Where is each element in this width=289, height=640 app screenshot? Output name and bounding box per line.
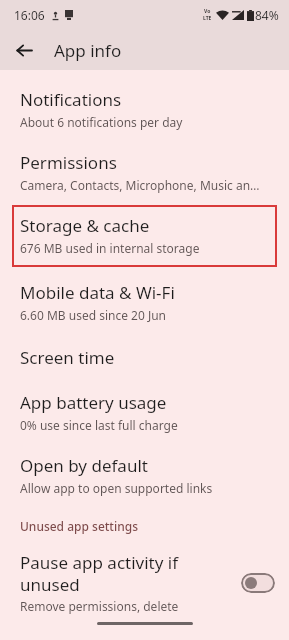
staticText: 676 MB used in internal storage (20, 240, 200, 256)
staticText: App battery usage (20, 391, 167, 414)
staticText: Open by default (20, 454, 148, 477)
button[interactable]: Mobile data & Wi-Fi (0, 281, 289, 323)
staticText: Permissions (20, 151, 117, 174)
staticText: Mobile data & Wi-Fi (20, 281, 175, 304)
button[interactable]: Pause app activity toggle (241, 573, 275, 593)
staticText: Camera, Contacts, Microphone, Music an… (20, 177, 260, 193)
button[interactable]: Pause app activity if unused (0, 551, 289, 614)
staticText: 84% (255, 7, 279, 23)
staticText: App info (54, 39, 122, 62)
staticText: LTE (203, 15, 212, 22)
staticText: Allow app to open supported links (20, 480, 213, 496)
staticText: 0% use since last full charge (20, 417, 178, 433)
button[interactable]: Storage & cache (12, 205, 277, 267)
staticText: 6.60 MB used since 20 Jun (20, 307, 167, 323)
staticText: Screen time (20, 346, 115, 369)
staticText: Notifications (20, 88, 122, 111)
staticText: 16:06 (14, 7, 45, 23)
button[interactable]: Back (8, 34, 40, 66)
staticText: Storage & cache (20, 214, 150, 237)
button[interactable]: Permissions (0, 151, 289, 193)
staticText: Unused app settings (20, 518, 138, 534)
button[interactable]: Notifications (0, 88, 289, 130)
button[interactable]: Open by default (0, 454, 289, 496)
button[interactable]: Screen time (0, 346, 289, 369)
button[interactable]: App battery usage (0, 391, 289, 433)
staticText: Remove permissions, delete (20, 598, 179, 614)
staticText: About 6 notifications per day (20, 114, 183, 130)
staticText: Vo (204, 8, 211, 15)
staticText: Pause app activity if unused (20, 551, 179, 596)
